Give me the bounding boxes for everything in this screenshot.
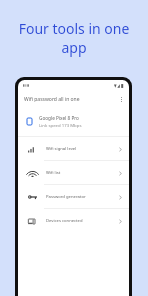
staticText: Wifi signal level — [46, 146, 77, 152]
staticText: Devices connected — [46, 218, 83, 224]
button[interactable]: Google Pixel 8 Pro — [18, 107, 129, 136]
button[interactable]: More options — [116, 94, 127, 105]
staticText: Password generator — [46, 194, 86, 200]
staticText: Wifi list — [46, 170, 61, 176]
button[interactable]: Devices connected — [18, 209, 129, 233]
staticText: Four tools in one app — [14, 19, 134, 57]
button[interactable]: Wifi signal level — [18, 137, 129, 161]
button[interactable]: Password generator — [18, 185, 129, 209]
staticText: Link speed 173 Mbps — [39, 122, 82, 128]
button[interactable]: Wifi list — [18, 161, 129, 185]
staticText: Wifi password all in one — [24, 96, 80, 103]
staticText: Google Pixel 8 Pro — [39, 115, 79, 121]
